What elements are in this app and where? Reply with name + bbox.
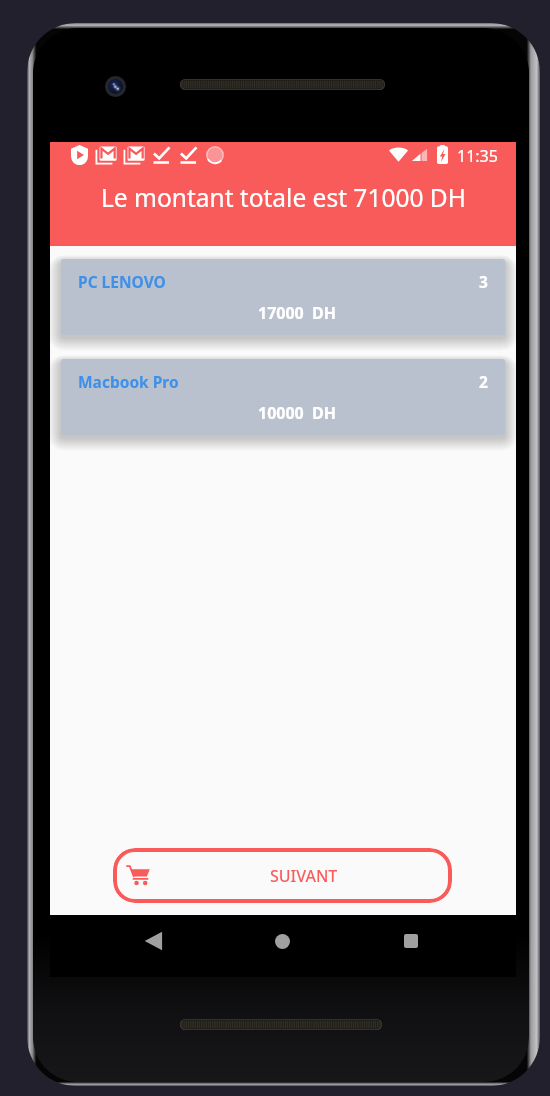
staticText: 17000 DH — [258, 302, 337, 324]
staticText: Macbook Pro — [78, 371, 179, 392]
staticText: 2 — [479, 371, 488, 392]
staticText: PC LENOVO — [78, 271, 166, 292]
button[interactable]: SUIVANT — [113, 848, 452, 903]
button[interactable]: Back — [84, 915, 224, 977]
staticText: 10000 DH — [258, 402, 337, 424]
button[interactable]: Macbook Pro — [61, 359, 505, 435]
staticText: 3 — [479, 271, 488, 292]
staticText: Le montant totale est 71000 DH — [101, 181, 466, 214]
button[interactable]: PC LENOVO — [61, 259, 505, 335]
button[interactable]: Recent apps — [346, 915, 476, 977]
staticText: 11:35 — [457, 145, 498, 167]
staticText: SUIVANT — [270, 865, 338, 887]
button[interactable]: Home — [217, 915, 347, 977]
